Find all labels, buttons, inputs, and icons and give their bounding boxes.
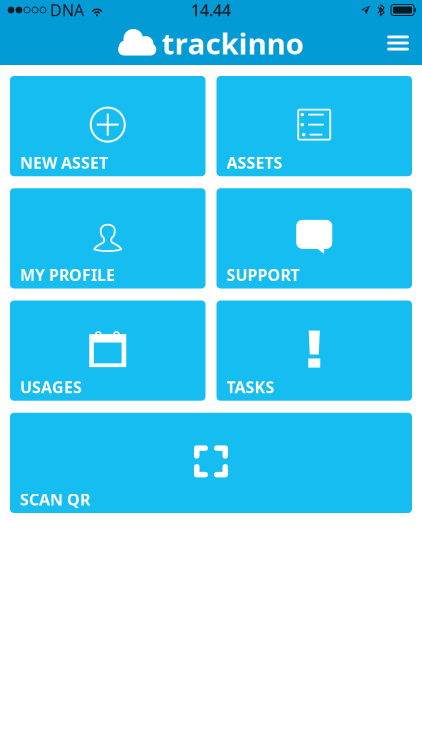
staticText: trackinno — [161, 23, 303, 62]
staticText: ASSETS — [226, 152, 282, 173]
staticText: USAGES — [20, 376, 82, 398]
staticText: SCAN QR — [20, 489, 90, 510]
button[interactable]: Menu — [374, 20, 422, 65]
staticText: 14.44 — [191, 0, 231, 21]
button[interactable]: SUPPORT — [216, 188, 412, 288]
button[interactable]: NEW ASSET — [10, 76, 205, 176]
staticText: SUPPORT — [226, 264, 299, 285]
staticText: TASKS — [226, 376, 274, 398]
staticText: DNA — [50, 0, 84, 21]
staticText: NEW ASSET — [20, 152, 108, 173]
button[interactable]: ASSETS — [216, 76, 412, 176]
button[interactable]: SCAN QR — [10, 413, 412, 513]
button[interactable]: TASKS — [216, 300, 412, 401]
staticText: MY PROFILE — [20, 264, 115, 285]
button[interactable]: MY PROFILE — [10, 188, 205, 288]
button[interactable]: USAGES — [10, 300, 205, 401]
